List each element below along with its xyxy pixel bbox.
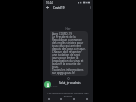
button[interactable]: Home (55, 95, 67, 102)
staticText: Covid19 (53, 6, 65, 10)
button[interactable]: Recents (67, 95, 80, 102)
button[interactable]: Keyboard (80, 95, 93, 102)
button[interactable]: Avec COVID-19 Le President de la Republi… (50, 31, 88, 76)
button[interactable]: More options (88, 5, 93, 10)
staticText: Salut, je voudrais (59, 81, 81, 85)
staticText: Les reponses peuvent contenir des erreur… (43, 91, 93, 97)
button[interactable]: Profile (44, 81, 51, 88)
button[interactable]: Back (45, 5, 50, 10)
staticText: Hier (43, 27, 93, 31)
staticText: 14:02 (51, 84, 58, 87)
button[interactable]: Back (43, 95, 55, 102)
staticText: 10:24 (46, 1, 53, 5)
staticText: Avec COVID-19 Le President de la Republi… (52, 32, 86, 75)
